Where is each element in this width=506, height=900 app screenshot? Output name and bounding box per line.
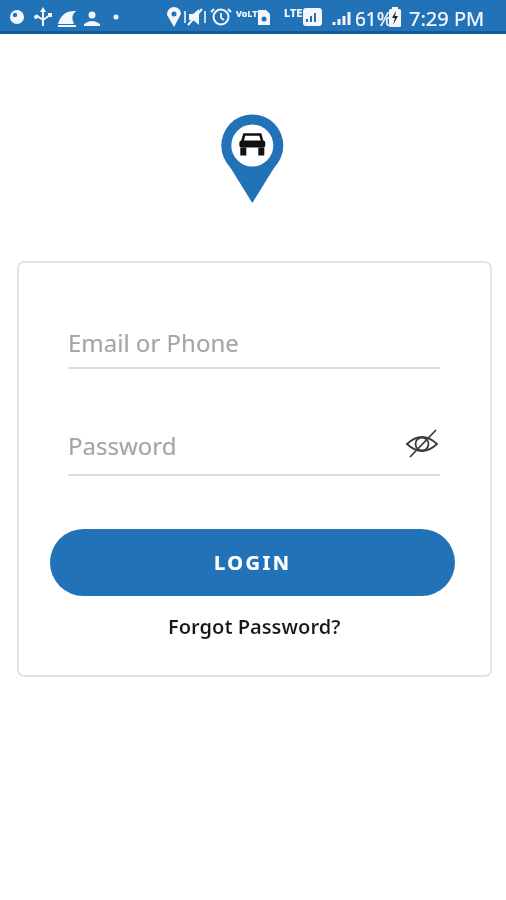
staticText: VoLTE xyxy=(236,7,263,19)
button[interactable]: LOGIN xyxy=(50,529,455,596)
staticText: LTE xyxy=(284,5,303,20)
button[interactable]: Forgot Password? xyxy=(17,606,492,646)
staticText: Email or Phone xyxy=(68,326,239,359)
staticText: Password xyxy=(68,429,177,462)
staticText: 7:29 PM xyxy=(409,5,485,32)
staticText: Forgot Password? xyxy=(168,613,341,640)
button[interactable]: Email or Phone xyxy=(68,316,440,368)
button[interactable]: Password xyxy=(68,419,440,471)
button[interactable] xyxy=(404,427,440,459)
staticText: 61% xyxy=(355,6,393,32)
staticText: LOGIN xyxy=(214,549,292,576)
